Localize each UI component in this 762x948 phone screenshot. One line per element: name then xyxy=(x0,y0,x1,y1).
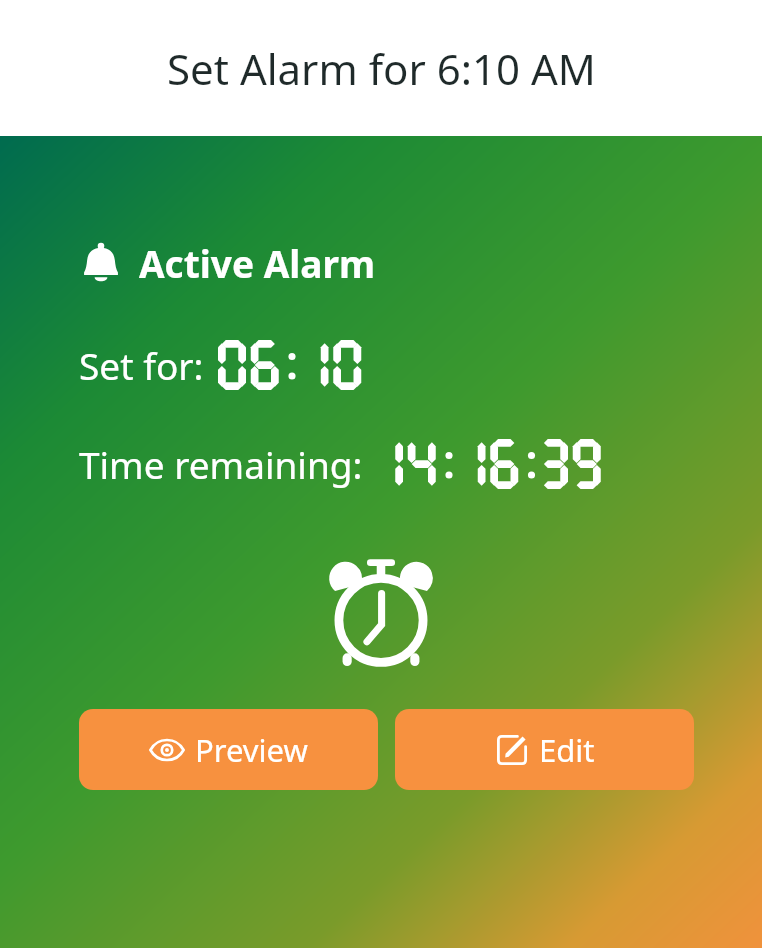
other: Edit xyxy=(495,733,529,767)
staticText: Active Alarm xyxy=(139,238,376,288)
staticText: Set Alarm for 6:10 AM xyxy=(167,40,596,97)
staticText: Preview xyxy=(195,729,308,771)
staticText: Edit xyxy=(539,729,595,771)
staticText: Set for: xyxy=(79,340,204,390)
button[interactable]: Edit xyxy=(395,709,694,790)
button[interactable]: Preview xyxy=(79,709,378,790)
staticText: Time remaining: xyxy=(79,439,363,489)
other: Preview xyxy=(149,732,185,768)
